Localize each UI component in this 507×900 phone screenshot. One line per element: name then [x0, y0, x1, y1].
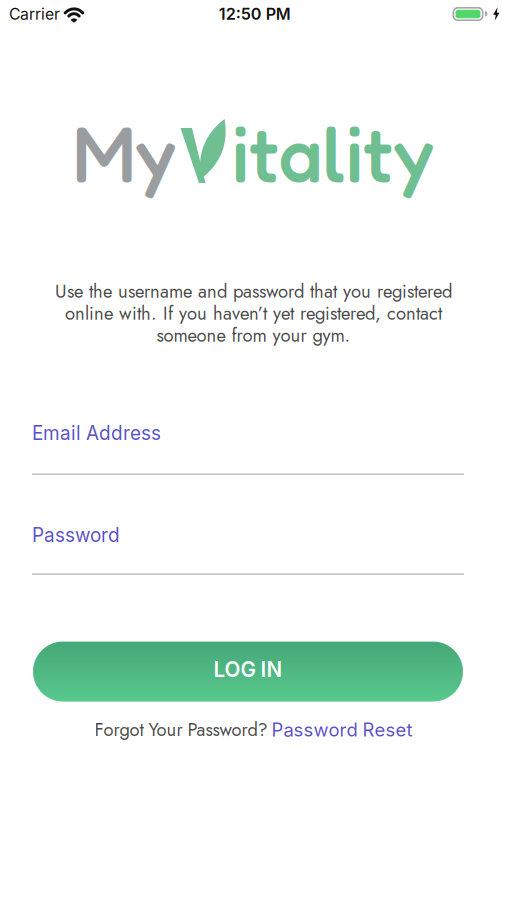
staticText: Password — [32, 524, 120, 547]
button[interactable]: LOG IN — [33, 642, 463, 702]
staticText: online with. If you haven’t yet register… — [65, 300, 442, 327]
staticText: LOG IN — [213, 657, 282, 682]
staticText: Carrier — [9, 4, 60, 23]
staticText: Password Reset — [271, 719, 412, 741]
button[interactable]: Password Reset — [271, 719, 412, 741]
staticText: itality — [231, 106, 434, 200]
button[interactable]: Email Address — [32, 422, 464, 475]
staticText: Email Address — [32, 422, 161, 445]
staticText: 12:50 PM — [219, 4, 291, 24]
staticText: Use the username and password that you r… — [55, 278, 452, 305]
staticText: someone from your gym. — [156, 322, 350, 349]
button[interactable]: Password — [32, 524, 464, 575]
staticText: My — [72, 106, 176, 200]
staticText: Forgot Your Password? — [94, 717, 267, 743]
